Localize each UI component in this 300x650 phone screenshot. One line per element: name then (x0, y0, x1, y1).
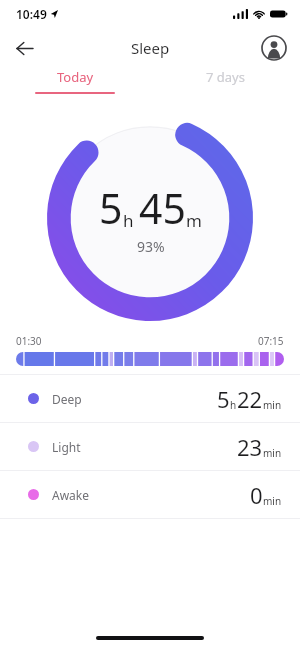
staticText: min (263, 446, 282, 460)
staticText: 0 (250, 480, 263, 510)
staticText: 5 (217, 384, 230, 414)
staticText: h (123, 209, 134, 232)
staticText: 01:30 (16, 334, 42, 348)
staticText: Light (52, 439, 81, 455)
staticText: Today (57, 68, 94, 86)
staticText: min (263, 494, 282, 508)
staticText: 7 days (206, 68, 245, 86)
button[interactable]: 7 days (150, 68, 300, 100)
button[interactable]: Light (0, 423, 300, 470)
staticText: h (230, 398, 237, 412)
staticText: 10:49 (16, 6, 47, 22)
button[interactable] (16, 352, 284, 366)
staticText: 5 (99, 180, 123, 236)
button[interactable]: Profile (258, 32, 290, 64)
button[interactable]: Today (0, 68, 150, 100)
button[interactable]: Back (6, 30, 42, 66)
staticText: 07:15 (258, 334, 284, 348)
staticText: Sleep (131, 38, 170, 58)
staticText: 23 (237, 432, 263, 462)
button[interactable]: Awake (0, 471, 300, 518)
staticText: m (186, 209, 202, 232)
staticText: 22 (237, 384, 263, 414)
staticText: 93% (137, 237, 165, 256)
button[interactable]: Deep (0, 375, 300, 422)
staticText: min (263, 398, 282, 412)
staticText: Awake (52, 487, 90, 503)
staticText: 45 (139, 180, 186, 236)
staticText: Deep (52, 391, 82, 407)
